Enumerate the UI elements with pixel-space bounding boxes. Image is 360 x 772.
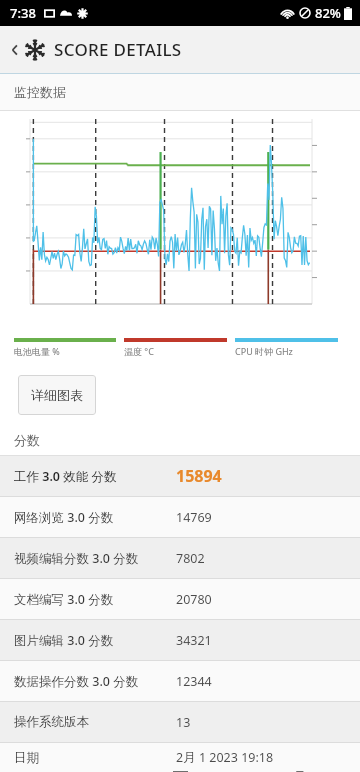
staticText: SCORE DETAILS — [54, 38, 182, 61]
staticText: 详细图表 — [31, 387, 83, 403]
staticText: 82% — [315, 4, 341, 22]
staticText: 图片编辑 3.0 分数 — [14, 632, 176, 649]
staticText: CPU 时钟 GHz — [235, 345, 293, 357]
button[interactable]: 图片编辑 3.0 分数 — [0, 620, 360, 660]
staticText: 电池电量 % — [14, 345, 60, 357]
staticText: 7802 — [176, 550, 205, 567]
staticText: 2月 1 2023 19:18 — [176, 749, 274, 766]
button[interactable]: Back — [6, 41, 24, 59]
staticText: 监控数据 — [14, 84, 66, 100]
staticText: 分数 — [14, 432, 40, 448]
button[interactable]: 详细图表 — [18, 375, 96, 415]
button[interactable]: 数据操作分数 3.0 分数 — [0, 661, 360, 701]
staticText: 温度 °C — [124, 345, 154, 357]
button[interactable]: 文档编写 3.0 分数 — [0, 579, 360, 619]
button[interactable]: 工作 3.0 效能 分数 — [0, 456, 360, 496]
button[interactable]: 视频编辑分数 3.0 分数 — [0, 538, 360, 578]
staticText: 13 — [176, 714, 191, 731]
staticText: 日期 — [14, 750, 176, 766]
staticText: 工作 3.0 效能 分数 — [14, 468, 176, 485]
staticText: 文档编写 3.0 分数 — [14, 591, 176, 608]
staticText: 网络浏览 3.0 分数 — [14, 509, 176, 526]
button[interactable]: 网络浏览 3.0 分数 — [0, 497, 360, 537]
staticText: 12344 — [176, 673, 212, 690]
staticText: 操作系统版本 — [14, 714, 176, 730]
staticText: 15894 — [176, 465, 222, 487]
button[interactable]: 操作系统版本 — [0, 702, 360, 742]
staticText: 7:38 — [10, 4, 36, 22]
staticText: 34321 — [176, 632, 212, 649]
staticText: 数据操作分数 3.0 分数 — [14, 673, 176, 690]
staticText: 20780 — [176, 591, 212, 608]
staticText: 14769 — [176, 509, 212, 526]
button[interactable]: 日期 — [0, 743, 360, 772]
staticText: 视频编辑分数 3.0 分数 — [14, 550, 176, 567]
